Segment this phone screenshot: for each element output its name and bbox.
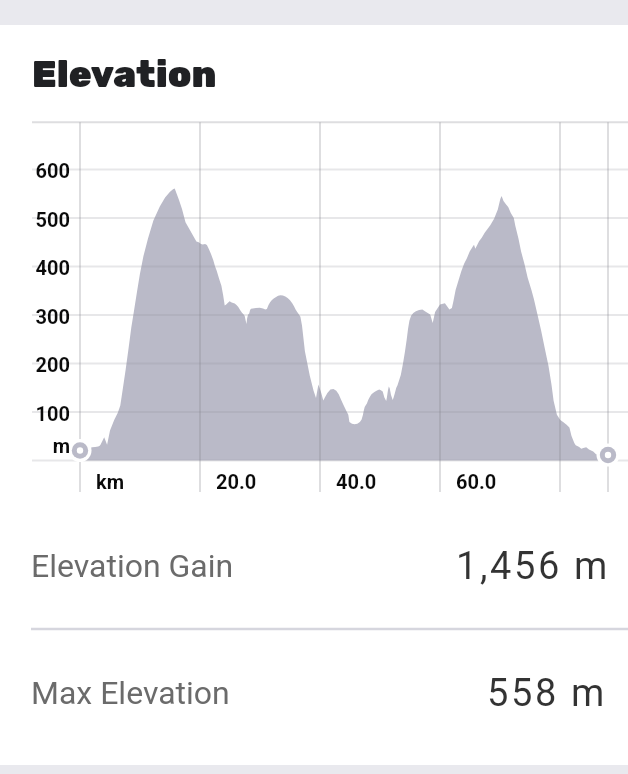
button[interactable]: Elevation Gain [0,510,628,629]
staticText: 60.0 [456,470,497,493]
staticText: m [0,434,70,457]
staticText: Elevation Gain [31,547,234,585]
button[interactable]: Max Elevation [0,637,628,756]
staticText: 558 m [487,671,607,716]
staticText: 1,456 m [456,544,610,589]
staticText: 500 [0,208,70,231]
staticText: 100 [0,402,70,425]
staticText: 300 [0,305,70,328]
staticText: Max Elevation [31,674,230,712]
staticText: km [96,470,125,493]
staticText: 400 [0,256,70,279]
staticText: 20.0 [216,470,257,493]
staticText: Elevation [32,52,217,96]
staticText: 600 [0,159,70,182]
staticText: 200 [0,353,70,376]
staticText: 40.0 [336,470,377,493]
